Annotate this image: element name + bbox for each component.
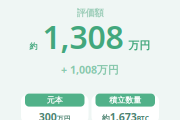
staticText: 積立数量 bbox=[109, 95, 141, 105]
staticText: 約 bbox=[29, 41, 37, 51]
staticText: 約 bbox=[102, 113, 110, 120]
staticText: 300 bbox=[39, 110, 57, 120]
button[interactable]: 元本 bbox=[21, 95, 88, 120]
staticText: 1.673 bbox=[110, 110, 137, 120]
button[interactable]: 積立数量 bbox=[91, 95, 159, 120]
staticText: 1,308 bbox=[42, 15, 123, 58]
staticText: 元本 bbox=[47, 95, 63, 105]
staticText: + 1,008万円 bbox=[61, 62, 119, 77]
staticText: 評価額 bbox=[76, 7, 103, 19]
staticText: 万円 bbox=[57, 115, 71, 120]
staticText: 万円 bbox=[128, 39, 150, 52]
staticText: BTC bbox=[137, 114, 149, 120]
